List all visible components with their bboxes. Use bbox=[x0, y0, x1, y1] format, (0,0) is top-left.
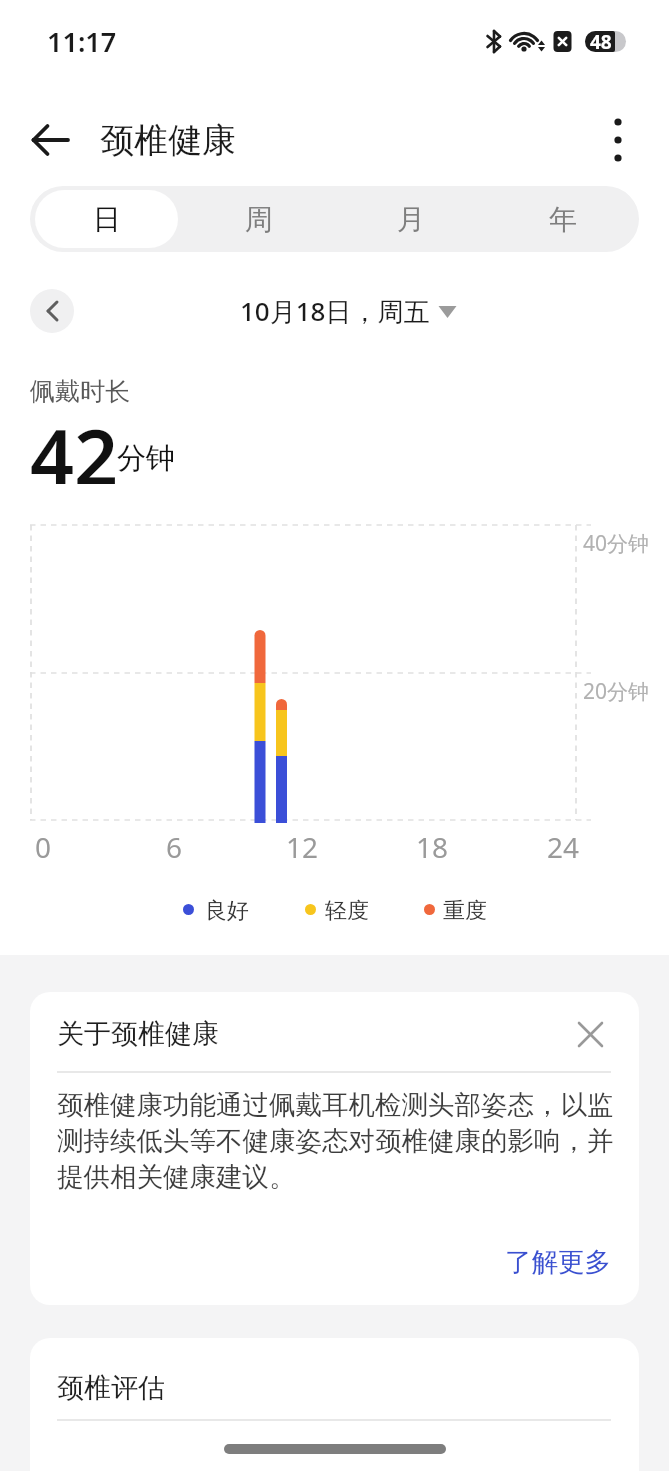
staticText: 颈椎健康功能通过佩戴耳机检测头部姿态，以监 测持续低头等不健康姿态对颈椎健康的影… bbox=[57, 1088, 614, 1193]
staticText: 月 bbox=[397, 202, 425, 237]
button[interactable] bbox=[570, 1014, 610, 1054]
staticText: 了解更多 bbox=[505, 1245, 611, 1278]
staticText: 关于颈椎健康 bbox=[57, 1017, 219, 1051]
staticText: 分钟 bbox=[117, 440, 175, 477]
staticText: 颈椎健康 bbox=[100, 119, 236, 162]
button[interactable] bbox=[30, 289, 74, 333]
staticText: 轻度 bbox=[325, 897, 369, 925]
button[interactable] bbox=[24, 114, 78, 166]
staticText: 18 bbox=[416, 828, 449, 866]
staticText: 日 bbox=[93, 202, 121, 237]
staticText: 42 bbox=[30, 404, 119, 484]
button[interactable] bbox=[30, 1338, 639, 1471]
staticText: 0 bbox=[35, 828, 52, 866]
staticText: 年 bbox=[549, 202, 577, 237]
staticText: 重度 bbox=[443, 897, 487, 925]
button[interactable] bbox=[598, 114, 638, 166]
staticText: 颈椎评估 bbox=[57, 1371, 165, 1405]
button[interactable]: 了解更多 bbox=[440, 1236, 611, 1286]
staticText: 48 bbox=[590, 29, 612, 55]
staticText: 良好 bbox=[205, 897, 249, 925]
staticText: 20分钟 bbox=[583, 677, 650, 706]
staticText: 10月18日，周五 bbox=[240, 293, 430, 329]
staticText: 周 bbox=[245, 202, 273, 237]
button[interactable]: 年 bbox=[487, 186, 639, 252]
staticText: 12 bbox=[286, 828, 319, 866]
staticText: 11:17 bbox=[47, 23, 117, 60]
button[interactable]: 月 bbox=[335, 186, 487, 252]
staticText: 24 bbox=[547, 828, 580, 866]
button[interactable]: 日 bbox=[30, 186, 183, 252]
staticText: 40分钟 bbox=[583, 529, 650, 558]
staticText: 6 bbox=[166, 828, 183, 866]
button[interactable]: 10月18日，周五 bbox=[0, 289, 669, 333]
button[interactable]: 周 bbox=[183, 186, 335, 252]
staticText: 佩戴时长 bbox=[30, 376, 130, 407]
